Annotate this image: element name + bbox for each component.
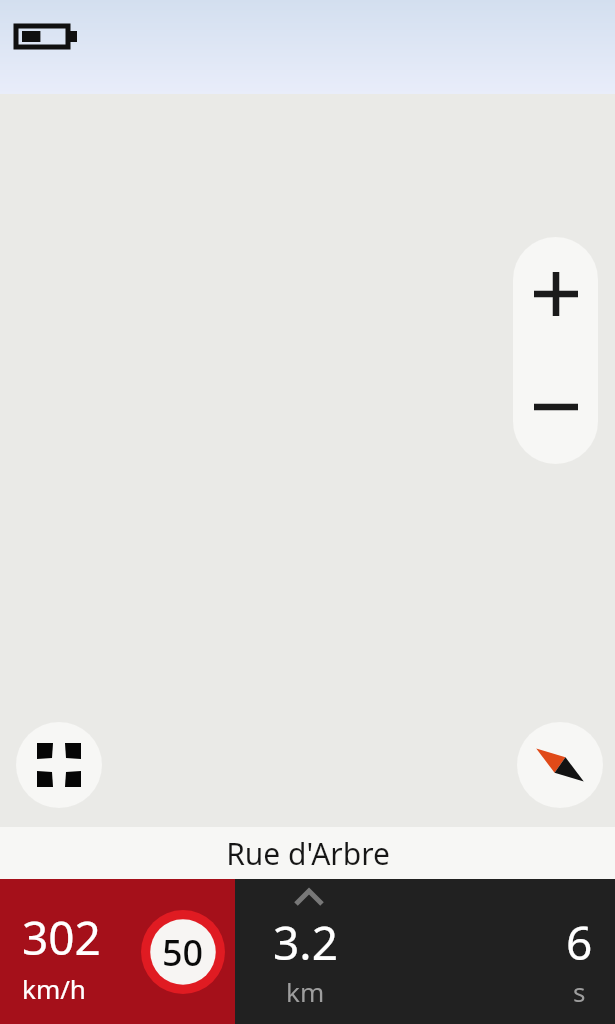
button[interactable]: 302 — [0, 879, 235, 1024]
staticText: 302 — [22, 906, 101, 969]
staticText: s — [573, 974, 586, 1009]
button[interactable]: Zoom in — [513, 237, 598, 350]
button[interactable]: Zoom out — [513, 350, 598, 464]
button[interactable]: Overview — [16, 722, 102, 808]
staticText: km/h — [22, 971, 86, 1006]
staticText: km — [286, 974, 325, 1009]
staticText: Rue d'Arbre — [226, 833, 390, 874]
staticText: 6 — [566, 911, 593, 974]
staticText: 50 — [162, 928, 204, 977]
button[interactable]: 3.2 — [235, 879, 615, 1024]
staticText: 3.2 — [273, 911, 338, 974]
button[interactable]: Rue d'Arbre — [0, 827, 615, 879]
button[interactable]: Compass — [517, 722, 603, 808]
